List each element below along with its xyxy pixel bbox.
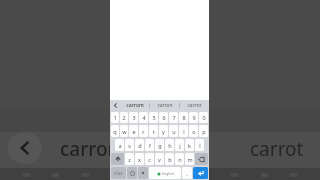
button[interactable]: o	[189, 125, 198, 137]
staticText: 2	[122, 114, 126, 121]
staticText: z	[128, 156, 131, 163]
button[interactable]: 3	[129, 112, 138, 123]
button[interactable]: Emoji	[127, 167, 137, 179]
staticText: carrot	[250, 136, 304, 162]
button[interactable]: e	[129, 125, 138, 137]
staticText: x	[138, 156, 141, 163]
staticText: 8	[182, 114, 186, 121]
staticText: 4	[142, 114, 146, 121]
staticText: g	[158, 142, 162, 149]
staticText: t	[153, 128, 155, 135]
staticText: h	[168, 142, 172, 149]
staticText: y	[162, 128, 165, 135]
staticText: d	[138, 142, 142, 149]
staticText: w	[122, 128, 127, 135]
staticText: v	[158, 156, 161, 163]
button[interactable]: q	[111, 125, 119, 137]
button[interactable]: i	[179, 125, 188, 137]
staticText: carrom	[60, 136, 126, 162]
staticText: carrot	[187, 102, 202, 109]
button[interactable]: g	[155, 139, 164, 151]
staticText: 1	[113, 114, 117, 121]
staticText: 6	[162, 114, 166, 121]
button[interactable]: v	[155, 153, 164, 165]
button[interactable]: y	[159, 125, 168, 137]
staticText: s	[128, 142, 131, 149]
staticText: l	[199, 142, 201, 149]
button[interactable]: u	[169, 125, 178, 137]
staticText: j	[179, 142, 181, 149]
button[interactable]: 9	[189, 112, 198, 123]
staticText: a	[118, 142, 122, 149]
staticText: carton	[157, 102, 173, 109]
button[interactable]: carrot	[180, 100, 209, 111]
button[interactable]: carrom	[121, 100, 149, 111]
button[interactable]: 0	[199, 112, 208, 123]
button[interactable]: z	[125, 153, 134, 165]
staticText: .	[186, 170, 188, 177]
staticText: f	[149, 142, 151, 149]
button[interactable]: f	[145, 139, 154, 151]
button[interactable]: 2	[120, 112, 128, 123]
button[interactable]: l	[195, 139, 204, 151]
button[interactable]: carton	[150, 100, 179, 111]
staticText: i	[183, 128, 185, 135]
button[interactable]: 5	[149, 112, 158, 123]
staticText: r	[142, 128, 145, 135]
staticText: English	[162, 171, 174, 176]
button[interactable]: 8	[179, 112, 188, 123]
button[interactable]: p	[199, 125, 208, 137]
staticText: c	[148, 156, 151, 163]
staticText: b	[168, 156, 172, 163]
staticText: o	[192, 128, 196, 135]
staticText: 3	[132, 114, 136, 121]
button[interactable]: 4	[139, 112, 148, 123]
staticText: u	[172, 128, 176, 135]
button[interactable]: Space	[149, 167, 181, 179]
staticText: n	[178, 156, 182, 163]
button[interactable]: d	[135, 139, 144, 151]
button[interactable]: ?123	[111, 167, 126, 179]
button[interactable]: k	[185, 139, 194, 151]
staticText: carrom	[126, 102, 144, 109]
button[interactable]: h	[165, 139, 174, 151]
button[interactable]: m	[185, 153, 194, 165]
button[interactable]: Backspace	[195, 153, 208, 165]
button[interactable]: Settings	[138, 167, 148, 179]
staticText: q	[113, 128, 117, 135]
button[interactable]: .	[182, 167, 192, 179]
button[interactable]: Previous suggestions	[110, 100, 121, 111]
button[interactable]: n	[175, 153, 184, 165]
button[interactable]: t	[149, 125, 158, 137]
button[interactable]: c	[145, 153, 154, 165]
button[interactable]: w	[120, 125, 128, 137]
button[interactable]: 1	[111, 112, 119, 123]
staticText: ?123	[114, 171, 123, 176]
button[interactable]: 7	[169, 112, 178, 123]
staticText: 7	[172, 114, 176, 121]
staticText: k	[188, 142, 191, 149]
button[interactable]: Back	[8, 132, 42, 164]
button[interactable]: Shift	[111, 153, 124, 165]
button[interactable]: j	[175, 139, 184, 151]
button[interactable]: x	[135, 153, 144, 165]
button[interactable]: b	[165, 153, 174, 165]
staticText: 0	[202, 114, 206, 121]
button[interactable]: Enter	[193, 167, 208, 179]
staticText: 5	[152, 114, 156, 121]
button[interactable]: r	[139, 125, 148, 137]
button[interactable]: a	[115, 139, 124, 151]
staticText: 9	[192, 114, 196, 121]
staticText: m	[187, 156, 193, 163]
staticText: p	[202, 128, 206, 135]
button[interactable]: 6	[159, 112, 168, 123]
staticText: e	[132, 128, 136, 135]
button[interactable]: s	[125, 139, 134, 151]
